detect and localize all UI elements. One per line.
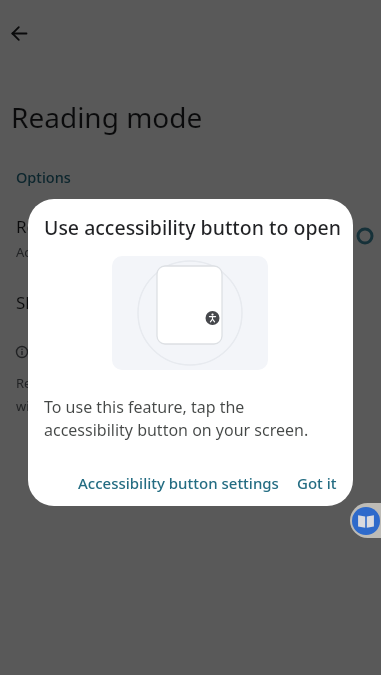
button[interactable]: Got it <box>297 473 337 493</box>
button[interactable]: Accessibility button settings <box>78 473 279 493</box>
staticText: Use accessibility button to open <box>44 214 341 241</box>
staticText: Reading mode <box>16 215 133 238</box>
staticText: Reading mode <box>11 98 203 136</box>
button[interactable] <box>350 503 381 538</box>
staticText: Options <box>16 167 71 187</box>
staticText: To use this feature, tap the accessibili… <box>44 396 309 440</box>
staticText: Activated <box>16 243 73 261</box>
staticText: Got it <box>297 473 337 493</box>
button[interactable] <box>12 26 27 41</box>
staticText: Accessibility button settings <box>78 473 279 493</box>
staticText: Reading mode may not work with some apps… <box>16 374 193 414</box>
staticText: Shortcut <box>16 291 85 314</box>
